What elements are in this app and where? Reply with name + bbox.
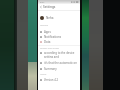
staticText: Summary <box>44 67 57 71</box>
staticText: Apps <box>44 30 51 34</box>
staticText: General <box>40 24 49 27</box>
staticText: 9:41 <box>40 1 45 4</box>
button[interactable]: Data <box>38 39 80 44</box>
button[interactable]: Apps <box>38 29 80 34</box>
button[interactable]: Version 4.2 <box>38 77 80 82</box>
staticText: according to the device setting and <box>44 51 78 58</box>
staticText: Data <box>44 40 51 44</box>
staticText: About <box>40 73 47 76</box>
button[interactable]: according to the device setting and <box>38 51 80 58</box>
button[interactable]: Summary <box>38 66 80 71</box>
button[interactable]: Back <box>39 5 43 9</box>
staticText: Display and sound <box>40 47 59 50</box>
button[interactable]: Notifications <box>38 34 80 39</box>
button[interactable]: it's that the automatic on <box>38 60 80 65</box>
staticText: Neha <box>46 16 54 20</box>
staticText: Notifications <box>44 35 62 39</box>
staticText: Settings <box>43 5 56 9</box>
button[interactable]: Neha <box>38 14 80 21</box>
staticText: Version 4.2 <box>44 78 58 82</box>
staticText: it's that the automatic on <box>44 61 77 65</box>
